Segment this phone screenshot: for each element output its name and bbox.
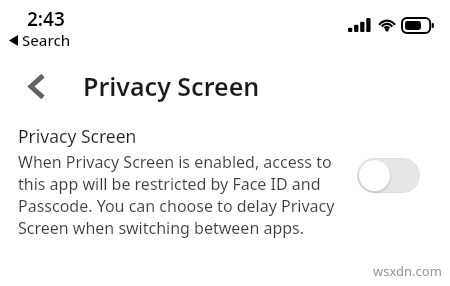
staticText: Privacy Screen [18, 124, 137, 148]
button[interactable]: Privacy Screen [0, 122, 450, 243]
staticText: 2:43 [27, 6, 65, 32]
staticText: Privacy Screen [83, 69, 260, 103]
button[interactable]: Privacy Screen toggle, off [357, 158, 420, 193]
button[interactable]: Search [6, 29, 74, 51]
button[interactable]: Back [16, 66, 56, 106]
staticText: wsxdn.com [373, 262, 442, 280]
staticText: When Privacy Screen is enabled, access t… [18, 151, 356, 239]
staticText: Search [22, 30, 71, 50]
